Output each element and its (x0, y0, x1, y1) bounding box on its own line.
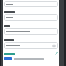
button[interactable] (4, 28, 58, 35)
other: Info (55, 52, 58, 55)
button[interactable] (4, 14, 58, 21)
button[interactable] (4, 57, 12, 60)
button[interactable] (4, 1, 58, 7)
button[interactable]: Info (4, 52, 58, 55)
button[interactable]: Show password (4, 42, 58, 49)
button[interactable]: Show password (52, 44, 56, 48)
